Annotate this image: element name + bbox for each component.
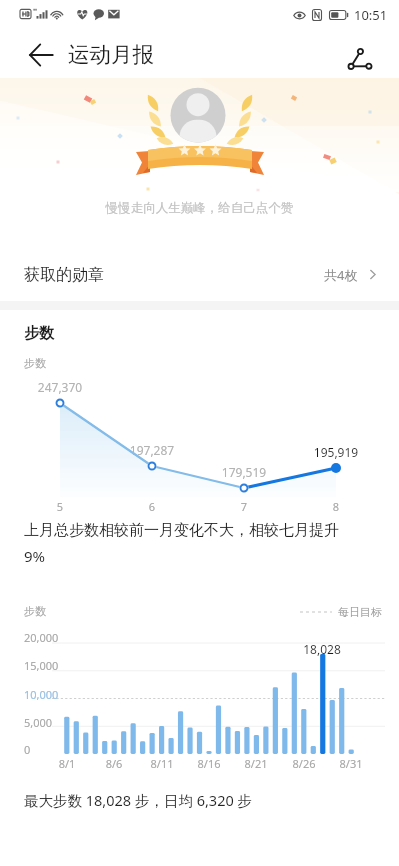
staticText: 8/31 <box>311 756 391 771</box>
staticText: 上月总步数相较前一月变化不大，相较七月提升9% <box>24 521 348 566</box>
staticText: 5 <box>20 499 100 514</box>
staticText: 0 <box>24 742 31 757</box>
staticText: 每日目标 <box>338 605 382 619</box>
staticText: 共4枚 <box>324 266 358 284</box>
staticText: 6 <box>112 499 192 514</box>
staticText: 8/26 <box>264 756 344 771</box>
staticText: 179,519 <box>204 464 284 480</box>
staticText: 15,000 <box>24 658 59 673</box>
button[interactable]: Share <box>338 33 381 76</box>
staticText: 最大步数 18,028 步，日均 6,320 步 <box>24 790 252 810</box>
staticText: 10,000 <box>24 687 59 702</box>
staticText: 247,370 <box>20 379 100 395</box>
staticText: 步数 <box>24 604 46 618</box>
staticText: 10:51 <box>354 6 388 24</box>
staticText: 获取的勋章 <box>24 265 104 285</box>
staticText: 8/1 <box>27 756 107 771</box>
staticText: 5,000 <box>24 715 53 730</box>
staticText: 7 <box>204 499 284 514</box>
staticText: 步数 <box>24 356 46 370</box>
button[interactable]: Back <box>19 33 62 76</box>
staticText: 20,000 <box>24 630 59 645</box>
staticText: 8/11 <box>122 756 202 771</box>
staticText: 8/6 <box>74 756 154 771</box>
staticText: 运动月报 <box>68 41 154 68</box>
staticText: 18,028 <box>282 641 362 657</box>
staticText: 8/21 <box>216 756 296 771</box>
button[interactable]: 获取的勋章 <box>0 248 399 301</box>
staticText: 197,287 <box>112 442 192 458</box>
staticText: 8 <box>296 499 376 514</box>
staticText: 8/16 <box>169 756 249 771</box>
staticText: 慢慢走向人生巅峰，给自己点个赞 <box>0 200 399 216</box>
staticText: 步数 <box>24 324 54 343</box>
staticText: 195,919 <box>296 444 376 460</box>
